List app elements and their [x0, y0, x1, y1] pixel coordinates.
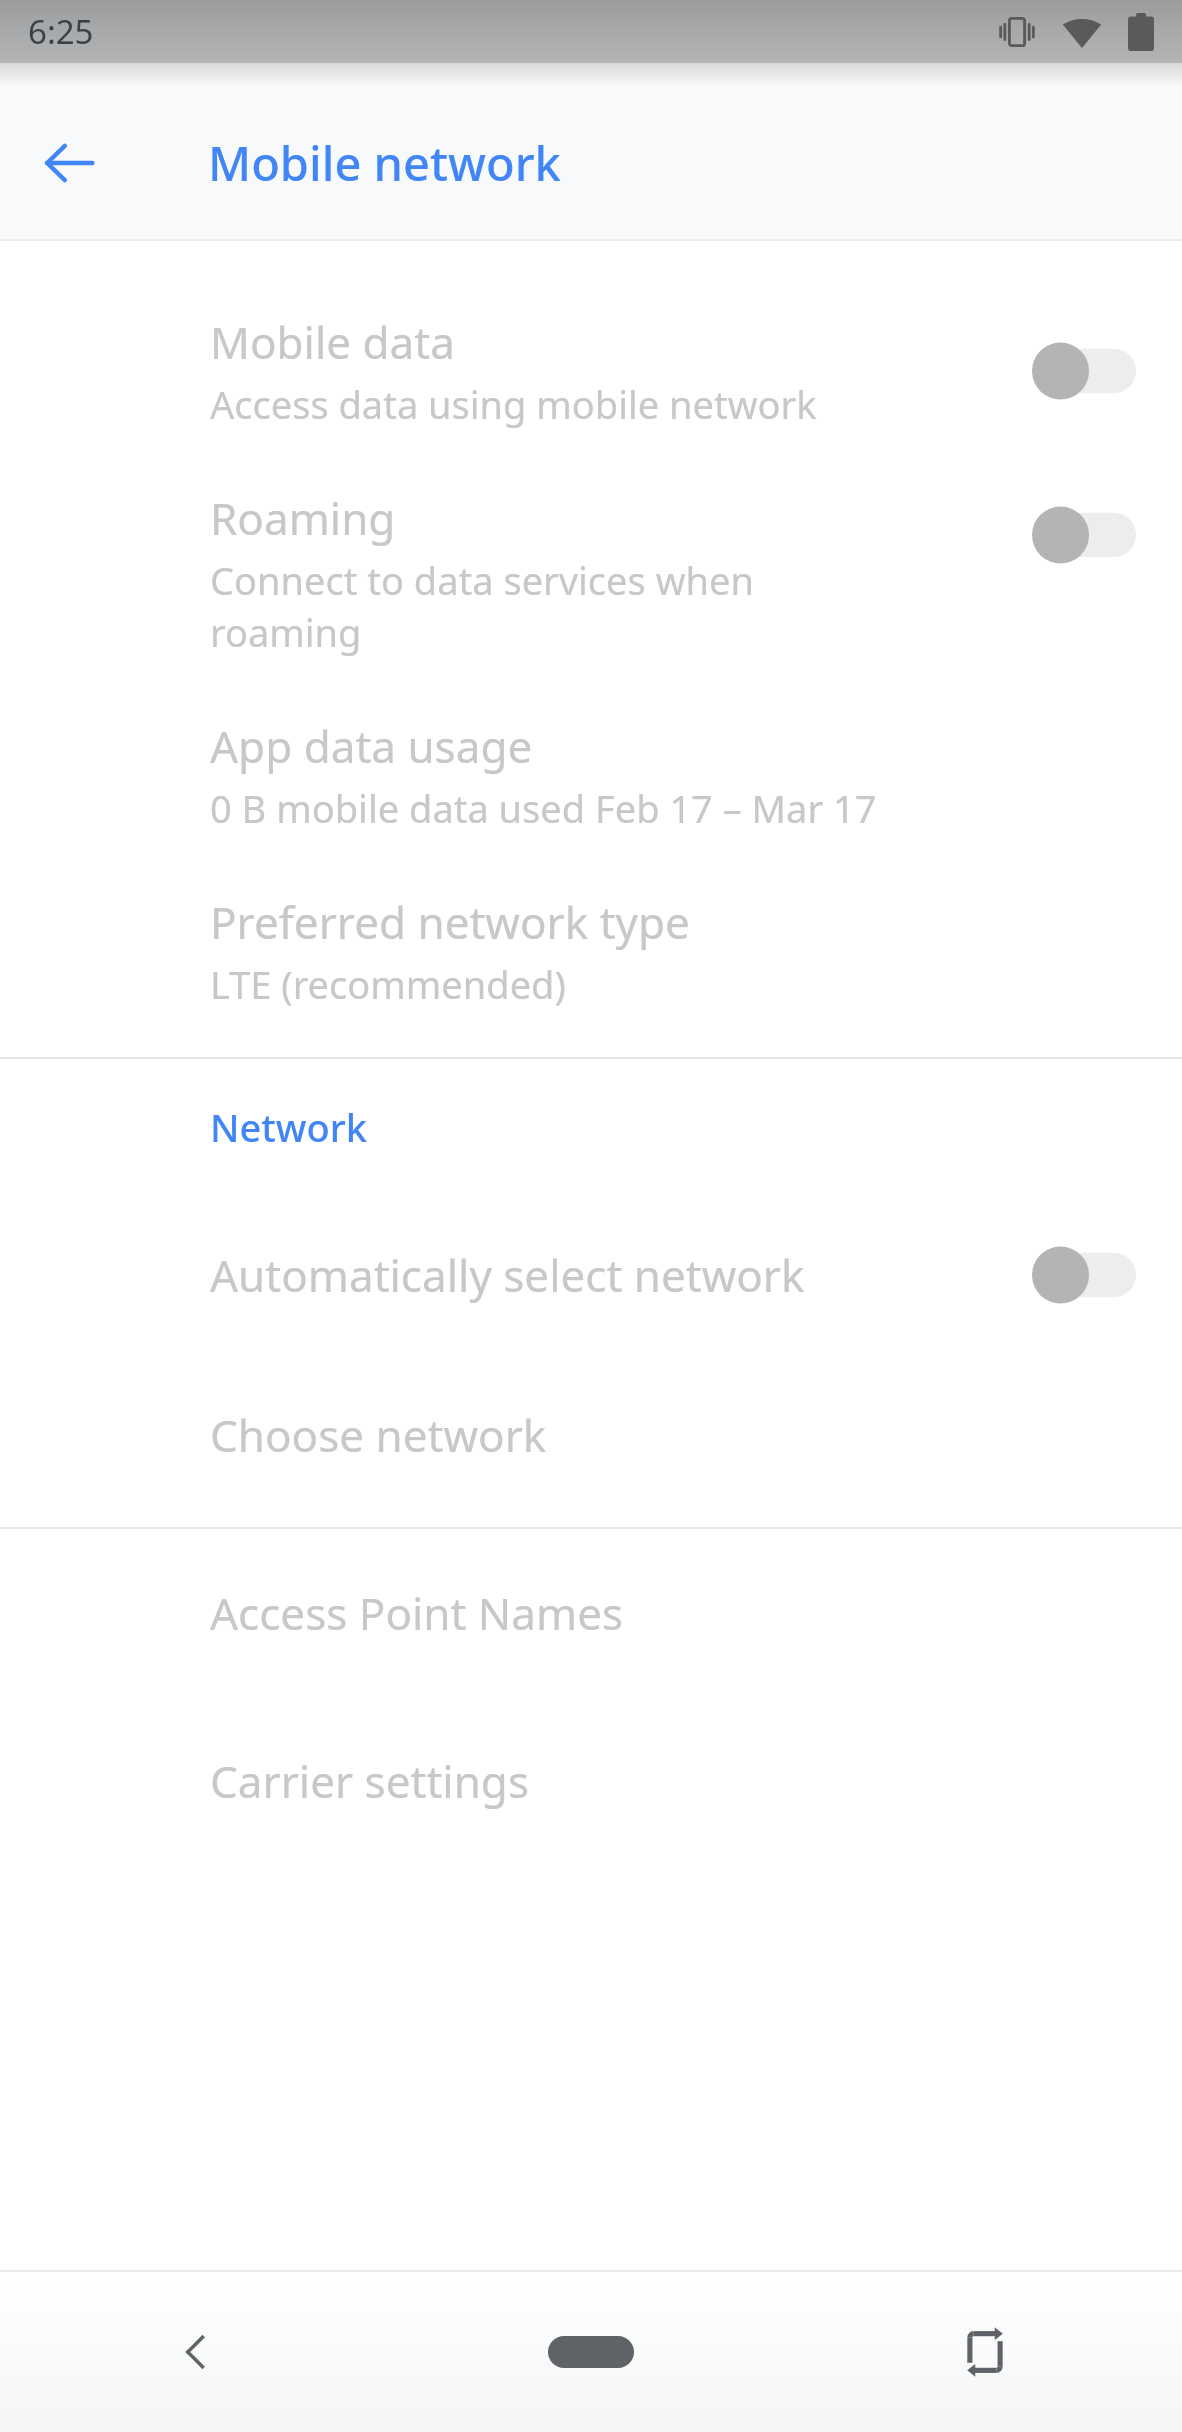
- staticText: Preferred network type: [210, 892, 690, 952]
- button[interactable]: Automatically select network: [0, 1195, 1182, 1355]
- staticText: App data usage: [210, 716, 533, 776]
- button[interactable]: Home: [394, 2272, 788, 2432]
- button[interactable]: Roaming: [0, 459, 1182, 687]
- staticText: Automatically select network: [210, 1245, 805, 1305]
- button[interactable]: Preferred network type: [0, 863, 1182, 1039]
- button[interactable]: Rotate screen: [788, 2272, 1182, 2432]
- staticText: Network: [210, 1101, 368, 1153]
- staticText: Roaming: [210, 488, 396, 548]
- button[interactable]: Choose network: [0, 1355, 1182, 1515]
- button[interactable]: Access Point Names: [0, 1529, 1182, 1697]
- staticText: Mobile data: [210, 312, 455, 372]
- button[interactable]: Toggle: [1032, 1244, 1136, 1306]
- button[interactable]: Toggle: [1032, 504, 1136, 566]
- button[interactable]: Back: [26, 120, 112, 206]
- button[interactable]: App data usage: [0, 687, 1182, 863]
- staticText: Carrier settings: [210, 1751, 529, 1811]
- staticText: Mobile network: [208, 131, 561, 195]
- button[interactable]: Carrier settings: [0, 1697, 1182, 1865]
- staticText: Connect to data services when roaming: [210, 554, 754, 658]
- button[interactable]: Toggle: [1032, 340, 1136, 402]
- button[interactable]: Mobile data: [0, 283, 1182, 459]
- staticText: LTE (recommended): [210, 958, 566, 1010]
- button[interactable]: Back: [0, 2272, 394, 2432]
- staticText: Access data using mobile network: [210, 378, 817, 430]
- staticText: 0 B mobile data used Feb 17 – Mar 17: [210, 782, 877, 834]
- staticText: Access Point Names: [210, 1583, 624, 1643]
- staticText: 6:25: [28, 9, 94, 54]
- staticText: Choose network: [210, 1405, 547, 1465]
